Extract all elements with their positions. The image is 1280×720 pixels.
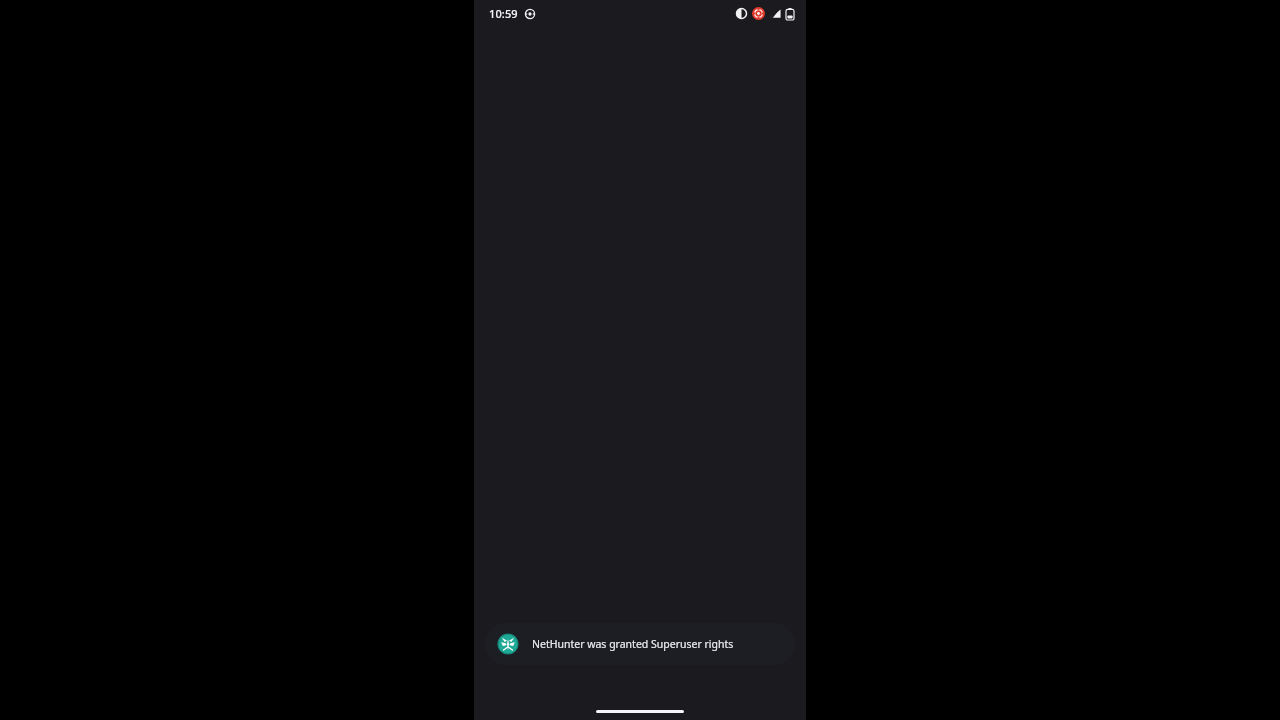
button[interactable]: Home gesture handle	[596, 710, 684, 713]
staticText: NetHunter was granted Superuser rights	[532, 637, 734, 651]
staticText: 10:59	[489, 6, 518, 21]
button[interactable]: NetHunter was granted Superuser rights	[485, 623, 795, 665]
